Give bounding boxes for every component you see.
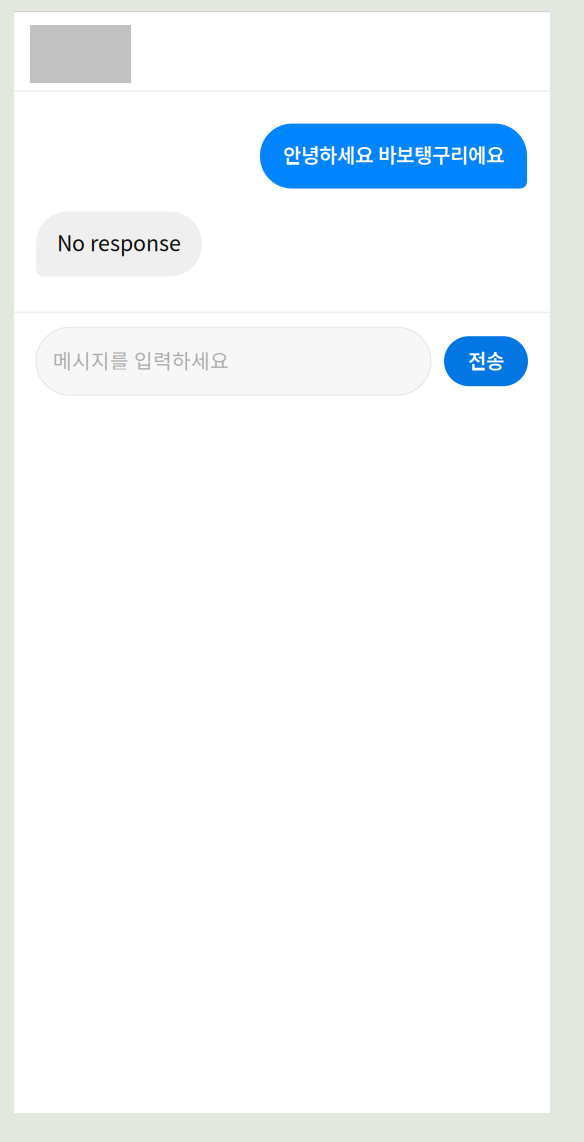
- staticText: 메시지를 입력하세요: [53, 345, 229, 374]
- staticText: 전송: [468, 345, 504, 374]
- staticText: No response: [57, 227, 181, 257]
- button[interactable]: 전송: [444, 336, 528, 386]
- button[interactable]: 메시지를 입력하세요: [36, 327, 431, 395]
- staticText: 안녕하세요 바보탱구리에요: [283, 140, 504, 169]
